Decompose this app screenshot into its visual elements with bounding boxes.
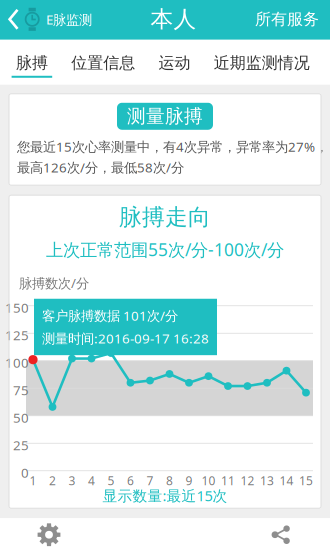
staticText: 14 [279,473,293,489]
staticText: 13 [260,473,274,489]
staticText: 2 [49,473,56,489]
button[interactable]: Share [246,520,316,550]
staticText: 1 [29,473,36,489]
staticText: 脉搏走向 [119,203,211,231]
staticText: 8 [166,473,173,489]
staticText: 10 [201,473,215,489]
staticText: 上次正常范围55次/分-100次/分 [46,238,284,261]
staticText: 近期监测情况 [214,53,310,73]
staticText: 3 [68,473,75,489]
staticText: 0 [21,464,29,481]
button[interactable]: 测量脉搏 [117,103,213,130]
staticText: 6 [127,473,134,489]
staticText: 125 [5,326,29,344]
button[interactable]: 运动 [154,40,195,85]
staticText: E脉监测 [46,10,92,28]
staticText: 脉搏 [16,53,48,73]
staticText: 100 [5,354,29,371]
staticText: 11 [221,473,235,489]
staticText: 9 [185,473,192,489]
staticText: 测量脉搏 [127,105,203,128]
staticText: 4 [88,473,95,489]
button[interactable]: 近期监测情况 [214,40,310,85]
staticText: 位置信息 [71,53,135,73]
staticText: 运动 [158,53,190,73]
button[interactable]: 所有服务 [249,0,330,40]
staticText: 12 [240,473,254,489]
staticText: 显示数量:最近15次 [102,486,227,505]
staticText: 所有服务 [255,9,319,29]
staticText: 脉搏数次/分 [19,274,89,292]
staticText: 25 [13,436,29,454]
staticText: 15 [299,473,313,489]
button[interactable]: E脉监测 [0,0,98,39]
button[interactable]: Settings [14,520,84,550]
staticText: 本人 [150,5,196,33]
staticText: 50 [13,409,29,426]
button[interactable]: 脉搏 [12,40,52,85]
staticText: 您最近15次心率测量中，有4次异常，异常率为27%， [17,138,328,155]
staticText: 最高126次/分，最低58次/分 [17,158,184,176]
staticText: 测量时间:2016-09-17 16:28 [42,329,209,347]
staticText: 5 [107,473,114,489]
staticText: 7 [146,473,153,489]
staticText: 75 [13,381,29,399]
staticText: 150 [5,299,29,316]
staticText: 客户脉搏数据 101次/分 [42,307,178,324]
button[interactable]: 位置信息 [71,40,135,85]
